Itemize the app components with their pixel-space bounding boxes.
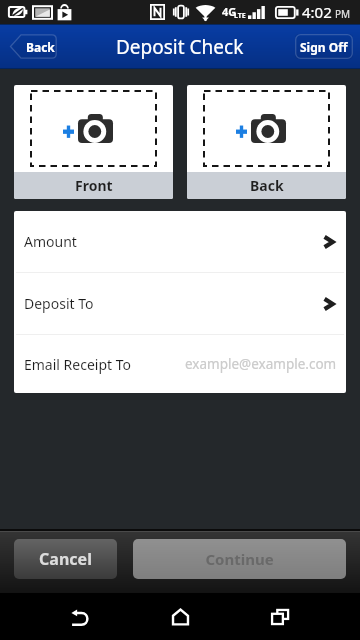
button[interactable]: Sign Off <box>295 34 353 59</box>
staticText: example@example.com <box>185 355 337 373</box>
button[interactable]: Back <box>187 85 346 199</box>
staticText: 4G <box>222 4 237 19</box>
staticText: Deposit To <box>24 294 94 313</box>
staticText: LTE <box>234 11 246 21</box>
button[interactable]: Recents <box>240 593 320 640</box>
button[interactable]: Amount <box>14 211 346 272</box>
button[interactable]: Back <box>40 593 120 640</box>
button[interactable]: Back <box>8 34 57 59</box>
button[interactable]: Home <box>140 593 220 640</box>
staticText: Deposit Check <box>116 34 244 60</box>
button[interactable]: Front <box>14 85 173 199</box>
button[interactable]: Deposit To <box>14 273 346 334</box>
staticText: Amount <box>24 232 77 251</box>
button[interactable]: Cancel <box>14 539 117 579</box>
staticText: Front <box>75 176 113 195</box>
staticText: Sign Off <box>300 39 348 55</box>
staticText: PM <box>335 7 351 21</box>
staticText: Back <box>250 176 284 195</box>
staticText: Continue <box>205 549 274 569</box>
staticText: Back <box>26 39 55 55</box>
staticText: Cancel <box>39 548 92 570</box>
button[interactable]: Email Receipt To <box>14 335 346 393</box>
button[interactable]: Continue <box>133 539 346 579</box>
staticText: Email Receipt To <box>24 355 132 374</box>
staticText: 4:02 <box>302 2 332 22</box>
